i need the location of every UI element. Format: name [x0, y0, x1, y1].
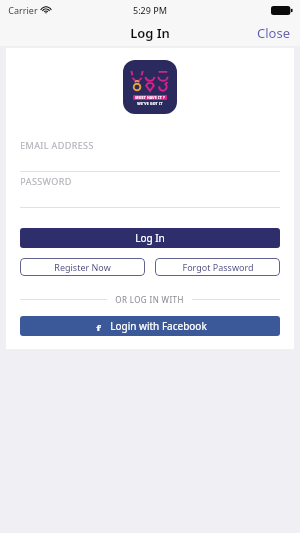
button[interactable]: Log In: [20, 228, 280, 248]
staticText: Forgot Password: [182, 261, 254, 273]
staticText: WE'VE GOT IT: [137, 101, 163, 106]
staticText: Log In: [135, 231, 165, 245]
button[interactable]: Forgot Password: [155, 258, 280, 276]
staticText: Register Now: [54, 261, 111, 273]
staticText: Carrier: [8, 4, 38, 16]
staticText: Login with Facebook: [110, 319, 207, 333]
staticText: MUST HAVE IT ?: [135, 95, 165, 100]
staticText: EMAIL ADDRESS: [20, 139, 94, 151]
staticText: 5:29 PM: [133, 4, 167, 16]
staticText: f: [96, 321, 101, 331]
staticText: OR LOG IN WITH: [115, 294, 184, 305]
other: App logo: [123, 60, 177, 114]
staticText: Log In: [130, 24, 170, 42]
button[interactable]: Facebook: [20, 316, 280, 336]
button[interactable]: Close: [247, 20, 300, 46]
staticText: Close: [257, 24, 290, 42]
button[interactable]: PASSWORD: [20, 172, 280, 208]
staticText: PASSWORD: [20, 175, 72, 187]
other: Facebook: [93, 321, 103, 331]
button[interactable]: EMAIL ADDRESS: [20, 136, 280, 172]
button[interactable]: Register Now: [20, 258, 145, 276]
